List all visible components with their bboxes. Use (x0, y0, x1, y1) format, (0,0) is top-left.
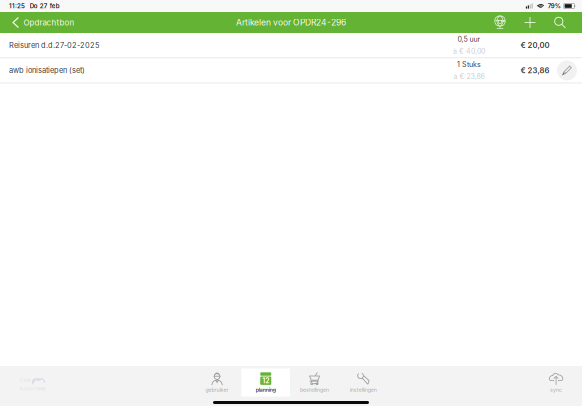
staticText: Artikelen voor OPDR24-296 (236, 17, 346, 28)
button[interactable]: gebruiker (193, 368, 241, 396)
button[interactable]: Add (515, 12, 545, 33)
staticText: Do 27 feb (30, 2, 60, 10)
staticText: à € 23,86 (453, 72, 484, 81)
button[interactable]: Edit (557, 60, 577, 80)
staticText: 79% (548, 2, 561, 10)
staticText: Opdrachtbon (23, 18, 74, 27)
staticText: à € 40,00 (453, 47, 485, 55)
staticText: awb ionisatiepen (set) (9, 66, 85, 75)
staticText: BUS SOFTWARE (20, 387, 46, 391)
button[interactable]: sync (532, 368, 580, 396)
staticText: € 23,86 (520, 66, 549, 75)
button[interactable]: 12 (241, 368, 290, 396)
button[interactable]: Opdrachtbon (0, 12, 82, 33)
staticText: 12 (262, 376, 269, 385)
staticText: € 20,00 (520, 40, 549, 50)
staticText: planning (256, 387, 276, 393)
staticText: gebruiker (205, 387, 228, 393)
button[interactable]: instellingen (339, 368, 387, 396)
staticText: 11:25 (9, 2, 25, 10)
staticText: sync (550, 387, 562, 393)
button[interactable]: bestellingen (290, 368, 339, 396)
button[interactable]: Scan (485, 12, 515, 33)
staticText: instellingen (350, 387, 377, 393)
staticText: CTLM (20, 378, 30, 383)
staticText: 1 Stuks (457, 60, 481, 69)
staticText: bestellingen (300, 387, 329, 393)
staticText: Reisuren d.d.27-02-2025 (9, 41, 100, 50)
staticText: 0,5 uur (457, 35, 480, 43)
button[interactable]: Search (545, 12, 575, 33)
